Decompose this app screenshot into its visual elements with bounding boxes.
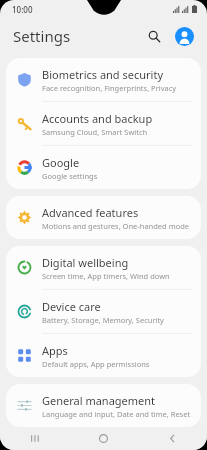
button[interactable]: Recents — [0, 427, 69, 450]
staticText: Apps — [42, 343, 68, 358]
staticText: Advanced features — [42, 205, 139, 220]
button[interactable]: Digital wellbeing — [6, 246, 201, 289]
button[interactable]: General management — [6, 384, 201, 427]
staticText: Screen time, App timers, Wind down — [42, 271, 170, 281]
staticText: Settings — [13, 26, 71, 46]
button[interactable]: Biometrics and security — [6, 58, 201, 101]
button[interactable]: Home — [69, 427, 138, 450]
staticText: 10:00 — [12, 4, 33, 15]
staticText: Digital wellbeing — [42, 255, 129, 270]
staticText: Google settings — [42, 171, 98, 181]
staticText: Google — [42, 155, 80, 170]
staticText: General management — [42, 393, 156, 408]
button[interactable]: Device care — [6, 290, 201, 333]
staticText: Battery, Storage, Memory, Security — [42, 315, 164, 325]
staticText: Accounts and backup — [42, 111, 153, 126]
button[interactable]: Account — [171, 23, 197, 49]
button[interactable]: Back — [138, 427, 207, 450]
staticText: Face recognition, Fingerprints, Privacy — [42, 83, 177, 93]
staticText: Device care — [42, 299, 101, 314]
staticText: Motions and gestures, One-handed mode — [42, 221, 190, 231]
staticText: Language and input, Date and time, Reset — [42, 409, 191, 419]
button[interactable]: Advanced features — [6, 196, 201, 239]
staticText: Samsung Cloud, Smart Switch — [42, 127, 148, 137]
button[interactable]: Google — [6, 146, 201, 189]
button[interactable]: Apps — [6, 334, 201, 377]
staticText: Biometrics and security — [42, 67, 163, 82]
staticText: Default apps, App permissions — [42, 359, 150, 369]
button[interactable]: Accounts and backup — [6, 102, 201, 145]
button[interactable]: Search — [141, 23, 167, 49]
